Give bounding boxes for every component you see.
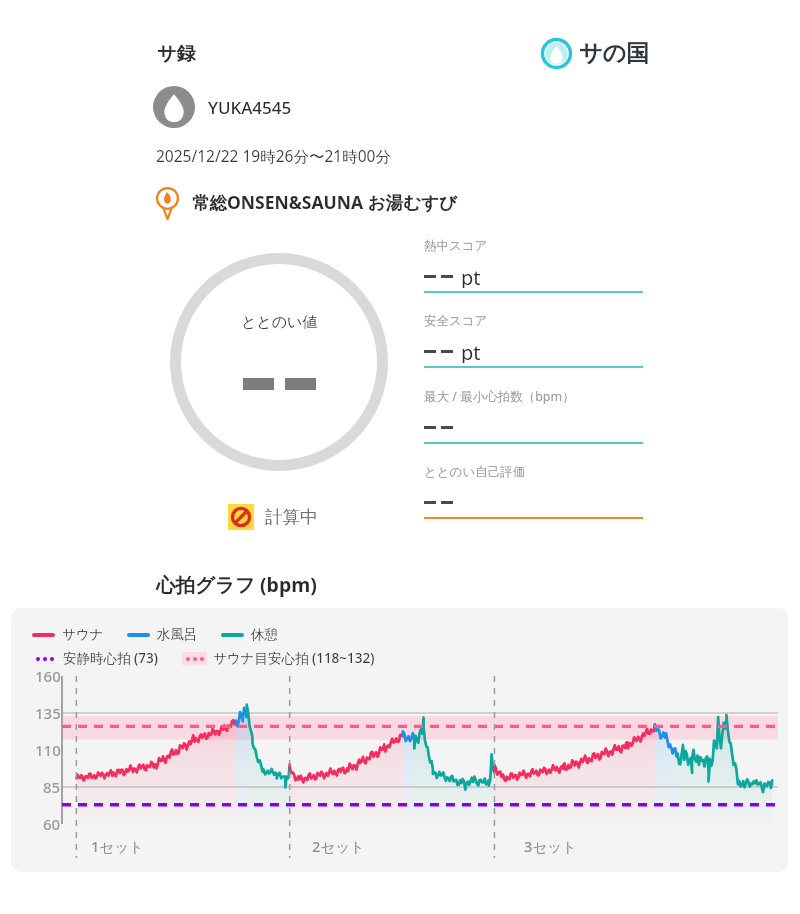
button[interactable]: サの国 home: [541, 38, 650, 69]
other: 計算中: [228, 504, 254, 530]
staticText: 水風呂: [157, 626, 198, 643]
staticText: 常総ONSEN&SAUNA お湯むすび: [192, 190, 457, 214]
staticText: 110: [35, 740, 61, 760]
staticText: 最大 / 最小心拍数（bpm）: [424, 388, 575, 405]
button[interactable]: 安全スコア: [424, 313, 643, 368]
button[interactable]: 計算中: [228, 504, 318, 530]
button[interactable]: YUKA4545: [153, 86, 292, 128]
staticText: 安静時心拍 (73): [63, 649, 158, 667]
button[interactable]: 熱中スコア: [424, 238, 643, 293]
staticText: 2025/12/22 19時26分〜21時00分: [156, 145, 391, 166]
staticText: サウナ目安心拍 (118~132): [213, 649, 375, 667]
staticText: 2セット: [312, 836, 365, 856]
staticText: 1セット: [91, 836, 144, 856]
staticText: ととのい値: [241, 313, 318, 332]
staticText: pt: [461, 339, 481, 363]
staticText: 心拍グラフ (bpm): [156, 571, 317, 598]
staticText: pt: [461, 264, 481, 288]
button[interactable]: 常総ONSEN&SAUNA お湯むすび: [152, 186, 457, 217]
button[interactable]: ととのい自己評価: [424, 464, 643, 519]
staticText: 休憩: [251, 626, 278, 643]
staticText: 60: [43, 814, 61, 834]
staticText: 135: [35, 703, 61, 723]
staticText: サ録: [157, 42, 196, 66]
staticText: 安全スコア: [424, 313, 488, 329]
staticText: 計算中: [265, 506, 318, 528]
staticText: サの国: [579, 39, 650, 68]
button[interactable]: 最大 / 最小心拍数（bpm）: [424, 388, 643, 444]
staticText: サウナ: [62, 626, 104, 643]
staticText: 3セット: [524, 836, 577, 856]
staticText: ととのい自己評価: [424, 464, 526, 480]
staticText: 熱中スコア: [424, 238, 488, 254]
staticText: YUKA4545: [208, 96, 292, 119]
staticText: 160: [35, 666, 61, 686]
staticText: 85: [43, 777, 61, 797]
